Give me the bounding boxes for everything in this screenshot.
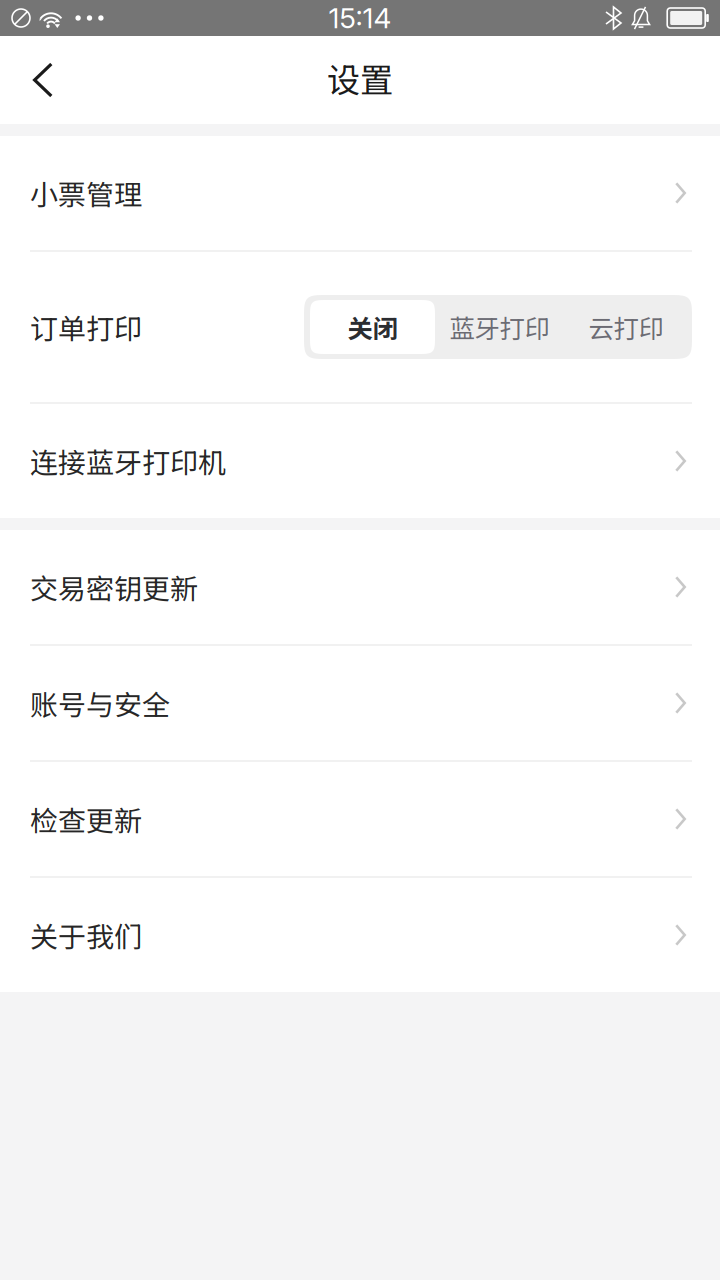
button[interactable]: 关闭 (310, 300, 435, 354)
staticText: 设置 (327, 54, 393, 102)
staticText: 连接蓝牙打印机 (30, 441, 226, 481)
button[interactable]: 账号与安全 (0, 646, 720, 760)
staticText: 交易密钥更新 (30, 567, 198, 607)
button[interactable]: Back (0, 36, 88, 124)
button[interactable]: 小票管理 (0, 136, 720, 250)
staticText: 小票管理 (30, 173, 142, 213)
button[interactable]: 蓝牙打印 (435, 300, 564, 354)
button[interactable]: 交易密钥更新 (0, 530, 720, 644)
button[interactable]: 云打印 (564, 300, 688, 354)
staticText: 15:14 (328, 1, 391, 35)
staticText: 关闭 (347, 309, 397, 345)
button[interactable]: 检查更新 (0, 762, 720, 876)
button[interactable]: 关于我们 (0, 878, 720, 992)
button[interactable]: 连接蓝牙打印机 (0, 404, 720, 518)
staticText: 检查更新 (30, 799, 142, 839)
staticText: 关于我们 (30, 915, 142, 955)
staticText: 订单打印 (30, 307, 142, 347)
staticText: 云打印 (588, 309, 663, 345)
staticText: 蓝牙打印 (449, 309, 549, 345)
staticText: 账号与安全 (30, 683, 170, 723)
